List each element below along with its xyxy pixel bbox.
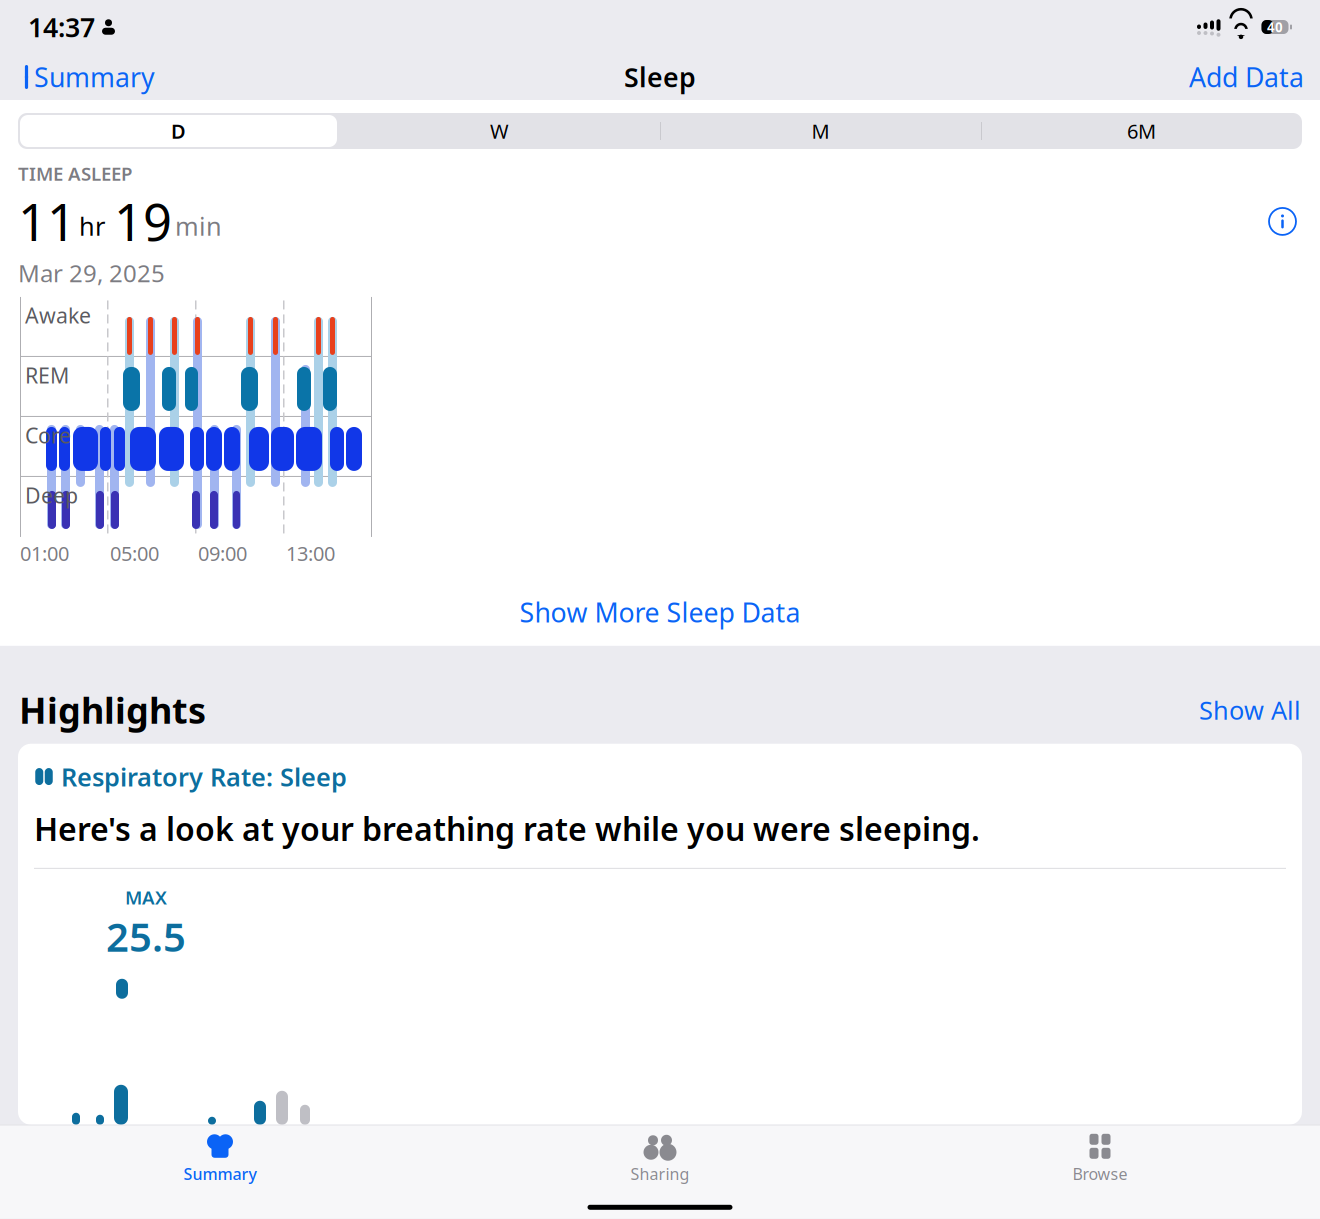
staticText: Summary — [183, 1163, 256, 1184]
button[interactable]: Summary — [0, 1125, 440, 1184]
staticText: 05:00 — [110, 540, 159, 566]
button[interactable]: Sharing — [440, 1125, 880, 1184]
staticText: 19 — [114, 188, 172, 255]
staticText: Awake — [25, 301, 91, 329]
button[interactable]: Respiratory Rate: Sleep — [0, 734, 1320, 1125]
staticText: 6M — [1127, 118, 1156, 144]
button[interactable]: About Time Asleep — [1263, 202, 1302, 241]
button[interactable]: W — [339, 113, 660, 149]
staticText: 11 — [18, 188, 76, 255]
staticText: Browse — [1072, 1163, 1127, 1184]
staticText: 01:00 — [20, 540, 69, 566]
staticText: D — [171, 118, 186, 144]
staticText: 13:00 — [286, 540, 335, 566]
staticText: 25.5 — [106, 910, 186, 963]
button[interactable]: Browse — [880, 1125, 1320, 1184]
staticText: Show More Sleep Data — [519, 594, 800, 630]
button[interactable]: D — [18, 113, 339, 149]
staticText: Summary — [34, 59, 155, 95]
staticText: 40 — [1267, 18, 1283, 36]
staticText: TIME ASLEEP — [18, 161, 132, 186]
staticText: REM — [25, 361, 69, 389]
button[interactable]: M — [660, 113, 981, 149]
staticText: Highlights — [19, 686, 206, 734]
button[interactable]: Show All — [1199, 687, 1301, 733]
button[interactable]: Show More Sleep Data — [0, 578, 1320, 646]
staticText: Respiratory Rate: Sleep — [61, 760, 347, 793]
button[interactable]: Summary — [14, 51, 157, 103]
staticText: Show All — [1199, 693, 1301, 727]
button[interactable]: 6M — [981, 113, 1302, 149]
staticText: min — [175, 209, 222, 243]
staticText: Core — [25, 421, 71, 449]
staticText: 14:37 — [28, 9, 95, 45]
staticText: Mar 29, 2025 — [18, 257, 165, 289]
staticText: MAX — [125, 885, 167, 910]
staticText: 09:00 — [198, 540, 247, 566]
staticText: Add Data — [1189, 59, 1304, 95]
staticText: M — [811, 118, 829, 144]
button[interactable]: Add Data — [1187, 51, 1306, 103]
staticText: Deep — [25, 481, 78, 509]
staticText: W — [490, 118, 509, 144]
staticText: hr — [79, 209, 105, 243]
staticText: Sleep — [624, 59, 696, 95]
staticText: Sharing — [630, 1163, 689, 1184]
staticText: Here's a look at your breathing rate whi… — [34, 807, 980, 850]
